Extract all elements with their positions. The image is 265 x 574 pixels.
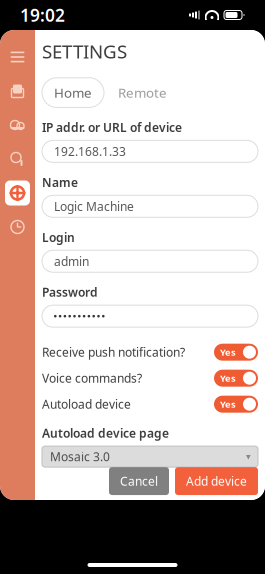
staticText: Autoload device page	[42, 425, 169, 441]
staticText: Remote	[118, 84, 167, 101]
staticText: 192.168.1.33	[54, 143, 126, 159]
button[interactable]: Voice commands?	[214, 370, 258, 387]
staticText: Name	[42, 174, 78, 190]
staticText: 19:02	[20, 3, 65, 26]
button[interactable]: Settings	[0, 176, 35, 210]
button[interactable]: Logic Machine	[42, 195, 258, 217]
staticText: admin	[54, 253, 89, 269]
button[interactable]: Add device	[175, 467, 258, 495]
button[interactable]: Home	[42, 78, 104, 107]
button[interactable]: 192.168.1.33	[42, 140, 258, 162]
staticText: Mosaic 3.0	[50, 449, 110, 465]
button[interactable]: Search	[0, 142, 35, 176]
button[interactable]: Menu	[0, 40, 35, 74]
staticText: ▾	[246, 451, 251, 462]
staticText: Yes	[220, 372, 236, 384]
button[interactable]: Cancel	[109, 467, 169, 495]
button[interactable]: History	[0, 210, 35, 244]
staticText: Add device	[186, 473, 247, 489]
staticText: Login	[42, 229, 75, 245]
button[interactable]: Remote	[108, 78, 177, 107]
staticText: SETTINGS	[42, 39, 127, 64]
staticText: Password	[42, 284, 98, 300]
button[interactable]	[42, 305, 258, 327]
button[interactable]: Receive push notification?	[214, 344, 258, 361]
staticText: Cancel	[120, 473, 158, 489]
button[interactable]: Mosaic 3.0	[42, 446, 258, 467]
staticText: Receive push notification?	[42, 344, 185, 360]
staticText: Home	[54, 84, 92, 101]
staticText: IP addr. or URL of device	[42, 119, 182, 135]
button[interactable]: Cloud	[0, 108, 35, 142]
staticText: Voice commands?	[42, 370, 142, 386]
staticText: Yes	[220, 398, 236, 410]
staticText: Autoload device	[42, 396, 131, 412]
staticText: Yes	[220, 346, 236, 358]
button[interactable]: Home	[0, 74, 35, 108]
staticText: Logic Machine	[54, 198, 134, 214]
button[interactable]: admin	[42, 250, 258, 272]
button[interactable]: Autoload device	[214, 396, 258, 413]
